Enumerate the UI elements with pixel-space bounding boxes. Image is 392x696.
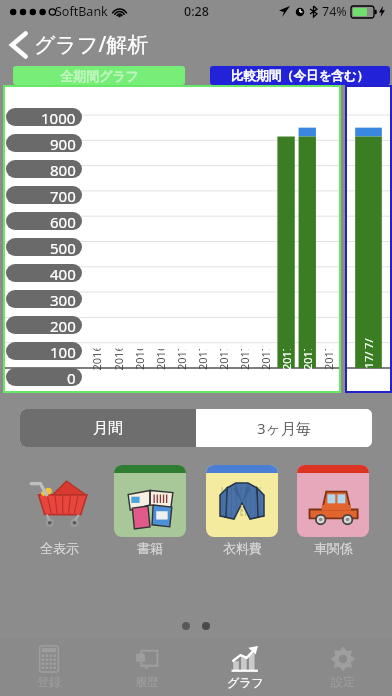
- staticText: 0:28: [184, 3, 209, 20]
- other: Back: [10, 32, 27, 58]
- button[interactable]: 車関係: [293, 465, 373, 556]
- button[interactable]: 2017/ 7/ 1 -: [347, 87, 390, 391]
- button[interactable]: 2016/ 9/ 1 -: [5, 87, 339, 391]
- staticText: 2016/10/ 1 -: [110, 348, 125, 370]
- staticText: 0: [67, 368, 76, 386]
- button[interactable]: グラフ: [196, 638, 294, 696]
- button[interactable]: 履歴: [98, 638, 196, 696]
- staticText: 2017/ 8/ 1 -: [321, 349, 336, 370]
- staticText: 700: [50, 186, 76, 204]
- staticText: 300: [50, 290, 76, 308]
- staticText: 車関係: [314, 540, 353, 556]
- staticText: 900: [50, 134, 76, 152]
- staticText: 2016/12/ 1 -: [153, 349, 168, 370]
- button[interactable]: Back: [0, 30, 157, 59]
- staticText: 月間: [93, 419, 123, 438]
- staticText: 2017/ 7/ 1 -: [300, 349, 315, 370]
- button[interactable]: 衣料費: [202, 465, 282, 556]
- staticText: 比較期間（今日を含む）: [231, 68, 370, 84]
- staticText: 200: [50, 316, 76, 334]
- staticText: 全表示: [40, 540, 79, 556]
- button[interactable]: 書籍: [110, 465, 190, 556]
- staticText: 800: [50, 160, 76, 178]
- staticText: 2016/11/ 1 -: [132, 349, 147, 370]
- button[interactable]: 3ヶ月毎: [196, 409, 372, 447]
- button[interactable]: 登録: [0, 638, 98, 696]
- button[interactable]: 設定: [294, 638, 392, 696]
- staticText: 500: [50, 238, 76, 256]
- staticText: 600: [50, 212, 76, 230]
- staticText: SoftBank: [55, 3, 108, 20]
- staticText: 全期間グラフ: [60, 68, 139, 84]
- staticText: 衣料費: [223, 540, 262, 556]
- staticText: 1000: [41, 108, 76, 126]
- staticText: 2017/ 5/ 1 -: [258, 349, 273, 370]
- button[interactable]: 月間: [20, 409, 196, 447]
- staticText: 書籍: [137, 540, 163, 556]
- staticText: 400: [50, 264, 76, 282]
- staticText: 100: [50, 342, 76, 360]
- staticText: グラフ: [227, 675, 264, 690]
- staticText: 74%: [322, 3, 347, 20]
- staticText: 2017/ 7/ 1 -: [361, 338, 376, 381]
- button[interactable]: 全表示: [19, 465, 99, 556]
- staticText: 2017/ 2/ 1 -: [195, 349, 210, 370]
- staticText: 履歴: [135, 674, 159, 689]
- staticText: 2017/ 1/ 1 -: [174, 349, 189, 370]
- staticText: 登録: [37, 674, 61, 689]
- button[interactable]: 比較期間（今日を含む）: [210, 66, 390, 85]
- staticText: 設定: [331, 674, 355, 689]
- staticText: 2016/ 9/ 1 -: [88, 348, 103, 370]
- button[interactable]: 全期間グラフ: [13, 66, 185, 85]
- staticText: 3ヶ月毎: [257, 418, 311, 438]
- staticText: 2017/ 6/ 1 -: [279, 349, 294, 370]
- staticText: 2017/ 3/ 1 -: [216, 349, 231, 370]
- staticText: 2017/ 4/ 1 -: [237, 349, 252, 370]
- staticText: グラフ/解析: [34, 30, 149, 59]
